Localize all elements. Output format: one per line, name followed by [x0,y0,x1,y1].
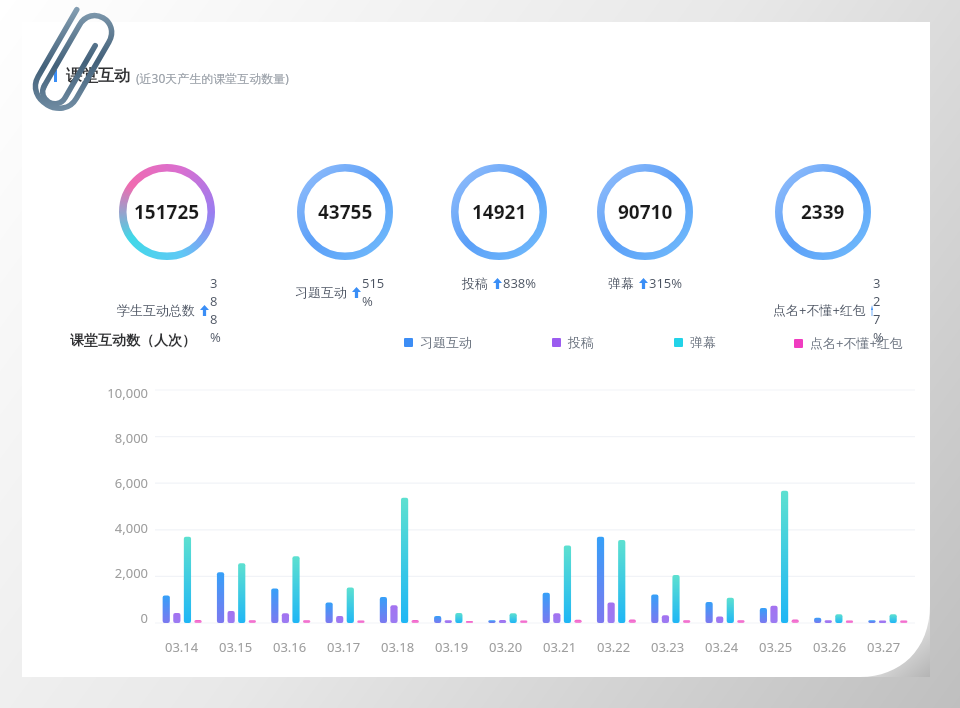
staticText: 弹幕 [608,275,634,291]
staticText: 03.15 [219,638,253,656]
staticText: 10,000 [107,384,148,402]
staticText: 4,000 [114,519,148,537]
button[interactable]: 点名+不懂+红包 [794,334,903,352]
staticText: 学生互动总数 [117,302,195,318]
staticText: 03.25 [759,638,793,656]
button[interactable]: 90710 [595,162,695,292]
staticText: 点名+不懂+红包 [810,334,903,352]
staticText: 03.14 [165,638,199,656]
staticText: 习题互动 [295,284,347,300]
button[interactable]: 投稿 [552,334,594,350]
staticText: 03.20 [489,638,523,656]
button[interactable]: 2339 [773,162,873,346]
staticText: 838% [503,274,537,292]
button[interactable]: 弹幕 [674,334,716,350]
staticText: 03.17 [327,638,361,656]
staticText: 习题互动 [420,334,472,350]
staticText: 03.21 [543,638,577,656]
staticText: (近30天产生的课堂互动数量) [136,70,289,86]
staticText: 03.22 [597,638,631,656]
staticText: 弹幕 [690,334,716,350]
staticText: 388% [210,274,217,346]
staticText: 投稿 [462,275,488,291]
staticText: 515% [362,274,395,310]
staticText: 课堂互动 [66,66,130,86]
staticText: 14921 [472,199,527,225]
staticText: 03.16 [273,638,307,656]
staticText: 03.19 [435,638,469,656]
staticText: 点名+不懂+红包 [773,301,866,319]
staticText: 03.27 [867,638,901,656]
button[interactable]: 151725 [117,162,217,346]
staticText: 03.26 [813,638,847,656]
staticText: 8,000 [114,429,148,447]
button[interactable]: 43755 [295,162,395,310]
staticText: 课堂互动数（人次） [70,332,196,350]
staticText: 投稿 [568,334,594,350]
staticText: 315% [649,274,683,292]
staticText: 03.23 [651,638,685,656]
button[interactable]: 14921 [449,162,549,292]
staticText: 43755 [318,199,373,225]
staticText: 0 [140,609,148,627]
staticText: 2339 [801,199,845,225]
button[interactable]: 课堂互动 [54,66,289,86]
staticText: 2,000 [114,564,148,582]
staticText: 90710 [618,199,673,225]
staticText: 151725 [134,199,200,225]
staticText: 6,000 [114,474,148,492]
staticText: 03.18 [381,638,415,656]
staticText: 03.24 [705,638,739,656]
button[interactable]: 习题互动 [404,334,472,350]
